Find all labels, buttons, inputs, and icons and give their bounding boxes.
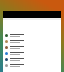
button[interactable] [3, 50, 61, 56]
button[interactable] [3, 56, 61, 62]
button[interactable] [3, 38, 61, 44]
button[interactable] [3, 44, 61, 50]
button[interactable] [3, 62, 61, 68]
button[interactable] [3, 32, 61, 38]
